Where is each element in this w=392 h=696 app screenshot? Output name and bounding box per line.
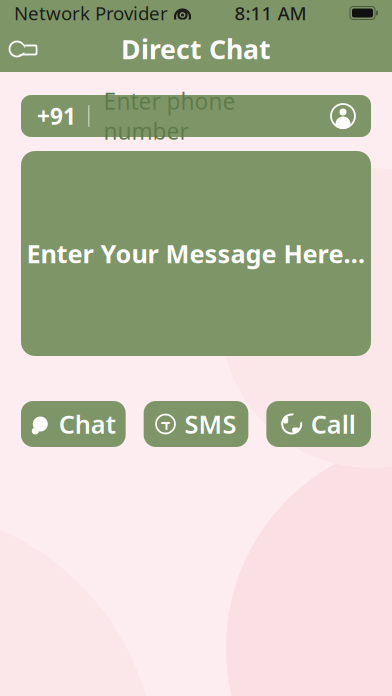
button[interactable]: Call: [266, 401, 371, 447]
staticText: 8:11 AM: [234, 1, 306, 25]
staticText: Call: [311, 407, 356, 441]
button[interactable]: Chat: [21, 401, 126, 447]
staticText: Direct Chat: [121, 31, 271, 67]
staticText: +91: [37, 101, 76, 131]
button[interactable]: +91: [21, 95, 371, 137]
staticText: Enter phone number: [103, 86, 235, 146]
staticText: Network Provider: [14, 1, 168, 25]
staticText: Chat: [59, 407, 116, 441]
button[interactable]: Enter Your Message Here…: [21, 151, 371, 356]
staticText: Enter Your Message Here…: [26, 237, 365, 270]
button[interactable]: Send SMS: [144, 401, 248, 447]
button[interactable]: Back: [0, 27, 46, 71]
staticText: SMS: [184, 407, 236, 441]
